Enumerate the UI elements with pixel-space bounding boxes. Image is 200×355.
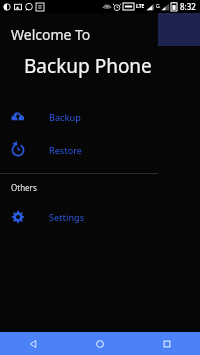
staticText: Welcome To [11, 25, 91, 44]
button[interactable]: Back [0, 332, 66, 355]
staticText: 8:32 [180, 1, 196, 12]
button[interactable]: Recent apps [133, 332, 200, 355]
button[interactable]: Restore [0, 139, 158, 161]
staticText: Settings [49, 211, 85, 223]
staticText: Restore [49, 144, 82, 156]
staticText: G [156, 3, 160, 10]
staticText: LTE [136, 3, 145, 10]
staticText: Backup Phone [24, 53, 152, 79]
staticText: Backup [49, 111, 81, 123]
button[interactable]: Backup [0, 106, 158, 128]
staticText: Others [11, 182, 37, 193]
button[interactable]: Home [66, 332, 133, 355]
button[interactable]: Settings [0, 206, 158, 228]
